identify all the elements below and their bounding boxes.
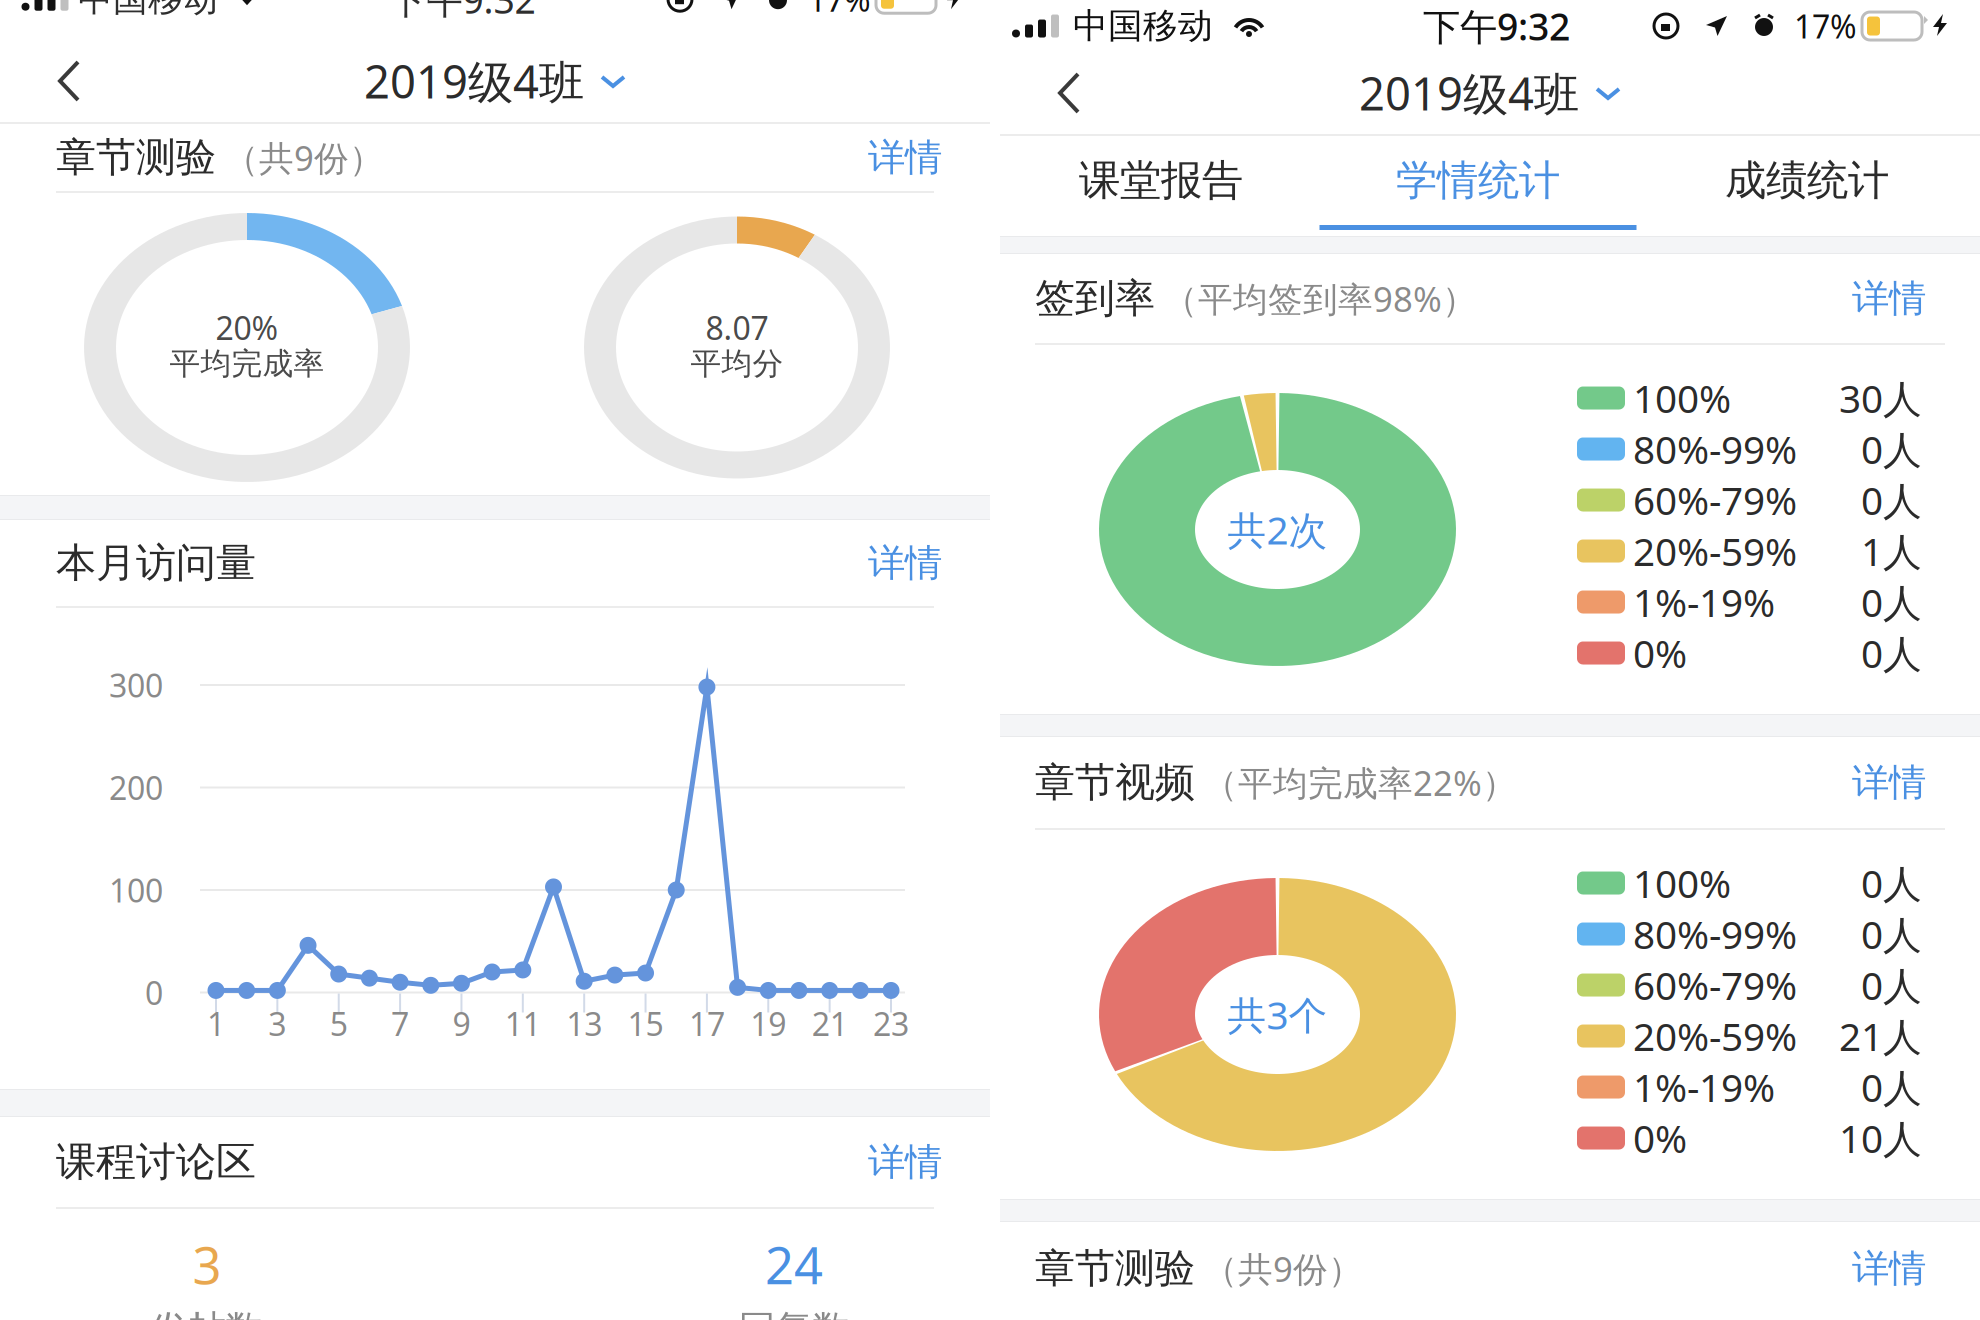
staticText: 0% (1633, 1112, 1687, 1164)
staticText: 发帖数 (151, 1306, 262, 1320)
staticText: 详情 (868, 135, 942, 180)
staticText: 100% (1633, 857, 1731, 909)
staticText: 3 (192, 1231, 221, 1298)
staticText: 下午9:32 (1423, 1, 1570, 51)
staticText: 课程讨论区 (56, 1137, 256, 1186)
staticText: 24 (765, 1231, 823, 1298)
staticText: 21 (812, 1002, 848, 1045)
staticText: 0人 (1861, 627, 1922, 679)
staticText: 300 (109, 664, 163, 706)
staticText: 7 (391, 1002, 409, 1045)
button[interactable]: 学情统计 (1322, 136, 1634, 236)
staticText: 15 (627, 1002, 663, 1045)
button[interactable]: 详情 (860, 1125, 942, 1199)
staticText: 1 (207, 1002, 225, 1045)
staticText: 9 (452, 1002, 470, 1045)
button[interactable]: 详情 (860, 121, 942, 194)
staticText: （共9份） (224, 134, 384, 180)
staticText: 100 (109, 869, 163, 911)
staticText: 17 (689, 1002, 725, 1045)
staticText: 下午9:32 (388, 0, 535, 24)
staticText: （平均完成率22%） (1203, 759, 1517, 805)
staticText: 详情 (1852, 276, 1926, 321)
staticText: 0人 (1861, 857, 1922, 909)
button[interactable]: 详情 (1844, 746, 1926, 819)
staticText: 11 (505, 1002, 541, 1045)
staticText: 0人 (1861, 576, 1922, 628)
button[interactable]: 详情 (1844, 1232, 1926, 1305)
staticText: 学情统计 (1396, 155, 1560, 206)
staticText: 0人 (1861, 423, 1922, 475)
staticText: 60%-79% (1633, 474, 1797, 526)
staticText: 平均完成率 (169, 345, 324, 383)
staticText: 1%-19% (1633, 576, 1775, 628)
staticText: 成绩统计 (1725, 155, 1889, 206)
staticText: （共9份） (1203, 1245, 1363, 1291)
button[interactable]: 详情 (1844, 262, 1926, 335)
staticText: 10人 (1839, 1112, 1922, 1164)
staticText: 20% (215, 306, 278, 349)
staticText: 19 (750, 1002, 786, 1045)
button[interactable]: 成绩统计 (1634, 136, 1980, 236)
staticText: 签到率 (1035, 274, 1155, 323)
staticText: 共3个 (1227, 989, 1327, 1040)
staticText: 0人 (1861, 474, 1922, 526)
staticText: 0人 (1861, 1061, 1922, 1113)
staticText: 0% (1633, 627, 1687, 679)
staticText: 2019级4班 (1359, 63, 1579, 123)
staticText: 100% (1633, 372, 1731, 424)
staticText: （平均签到率98%） (1163, 275, 1477, 321)
staticText: 章节测验 (56, 133, 216, 182)
staticText: 0人 (1861, 908, 1922, 960)
staticText: 13 (566, 1002, 602, 1045)
staticText: 17% (1794, 5, 1857, 47)
staticText: 详情 (868, 1139, 942, 1185)
staticText: 20%-59% (1633, 525, 1797, 577)
staticText: 1人 (1861, 525, 1922, 577)
staticText: 80%-99% (1633, 423, 1797, 475)
staticText: 中国移动 (78, 0, 218, 20)
staticText: 1%-19% (1633, 1061, 1775, 1113)
staticText: 20%-59% (1633, 1010, 1797, 1062)
staticText: 详情 (1852, 760, 1926, 805)
staticText: 平均分 (690, 345, 783, 383)
button[interactable]: Back (1000, 51, 1116, 135)
button[interactable]: Back (0, 39, 116, 123)
staticText: 23 (873, 1002, 909, 1045)
staticText: 2019级4班 (364, 51, 584, 111)
staticText: 5 (330, 1002, 348, 1045)
staticText: 21人 (1839, 1010, 1922, 1062)
staticText: 共2次 (1227, 504, 1327, 555)
staticText: 章节测验 (1035, 1244, 1195, 1293)
staticText: 200 (109, 766, 163, 809)
staticText: 17% (808, 0, 871, 20)
staticText: 详情 (1852, 1246, 1926, 1291)
button[interactable]: 详情 (860, 526, 942, 600)
staticText: 章节视频 (1035, 758, 1195, 807)
staticText: 中国移动 (1073, 5, 1213, 47)
staticText: 本月访问量 (56, 538, 256, 587)
staticText: 30人 (1839, 372, 1922, 424)
staticText: 60%-79% (1633, 959, 1797, 1011)
staticText: 课堂报告 (1079, 155, 1243, 206)
staticText: 0人 (1861, 959, 1922, 1011)
staticText: 80%-99% (1633, 908, 1797, 960)
staticText: 8.07 (705, 306, 768, 349)
button[interactable]: 课堂报告 (1000, 136, 1322, 236)
staticText: 详情 (868, 540, 942, 586)
staticText: 0 (145, 971, 163, 1014)
staticText: 回复数 (738, 1306, 849, 1320)
staticText: 3 (268, 1002, 286, 1045)
